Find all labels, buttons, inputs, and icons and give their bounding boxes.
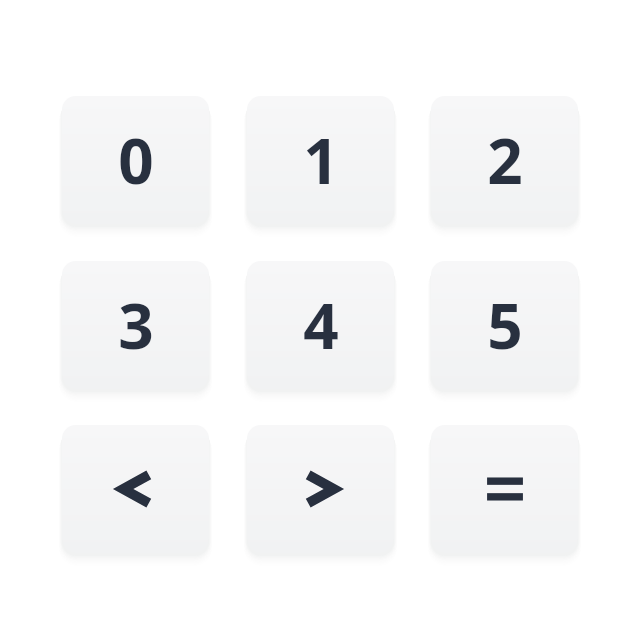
button[interactable]: Equals bbox=[431, 425, 578, 553]
button[interactable]: Greater than bbox=[247, 425, 394, 553]
staticText: 3 bbox=[118, 283, 154, 367]
button[interactable]: 4 bbox=[247, 261, 394, 389]
staticText: 1 bbox=[303, 118, 339, 202]
staticText: 5 bbox=[487, 283, 523, 367]
staticText: 4 bbox=[303, 283, 339, 367]
button[interactable]: 2 bbox=[431, 96, 578, 224]
staticText: 2 bbox=[487, 118, 523, 202]
button[interactable]: Less than bbox=[62, 425, 209, 553]
staticText: 0 bbox=[118, 118, 154, 202]
button[interactable]: 1 bbox=[247, 96, 394, 224]
button[interactable]: 5 bbox=[431, 261, 578, 389]
button[interactable]: 0 bbox=[62, 96, 209, 224]
button[interactable]: 3 bbox=[62, 261, 209, 389]
